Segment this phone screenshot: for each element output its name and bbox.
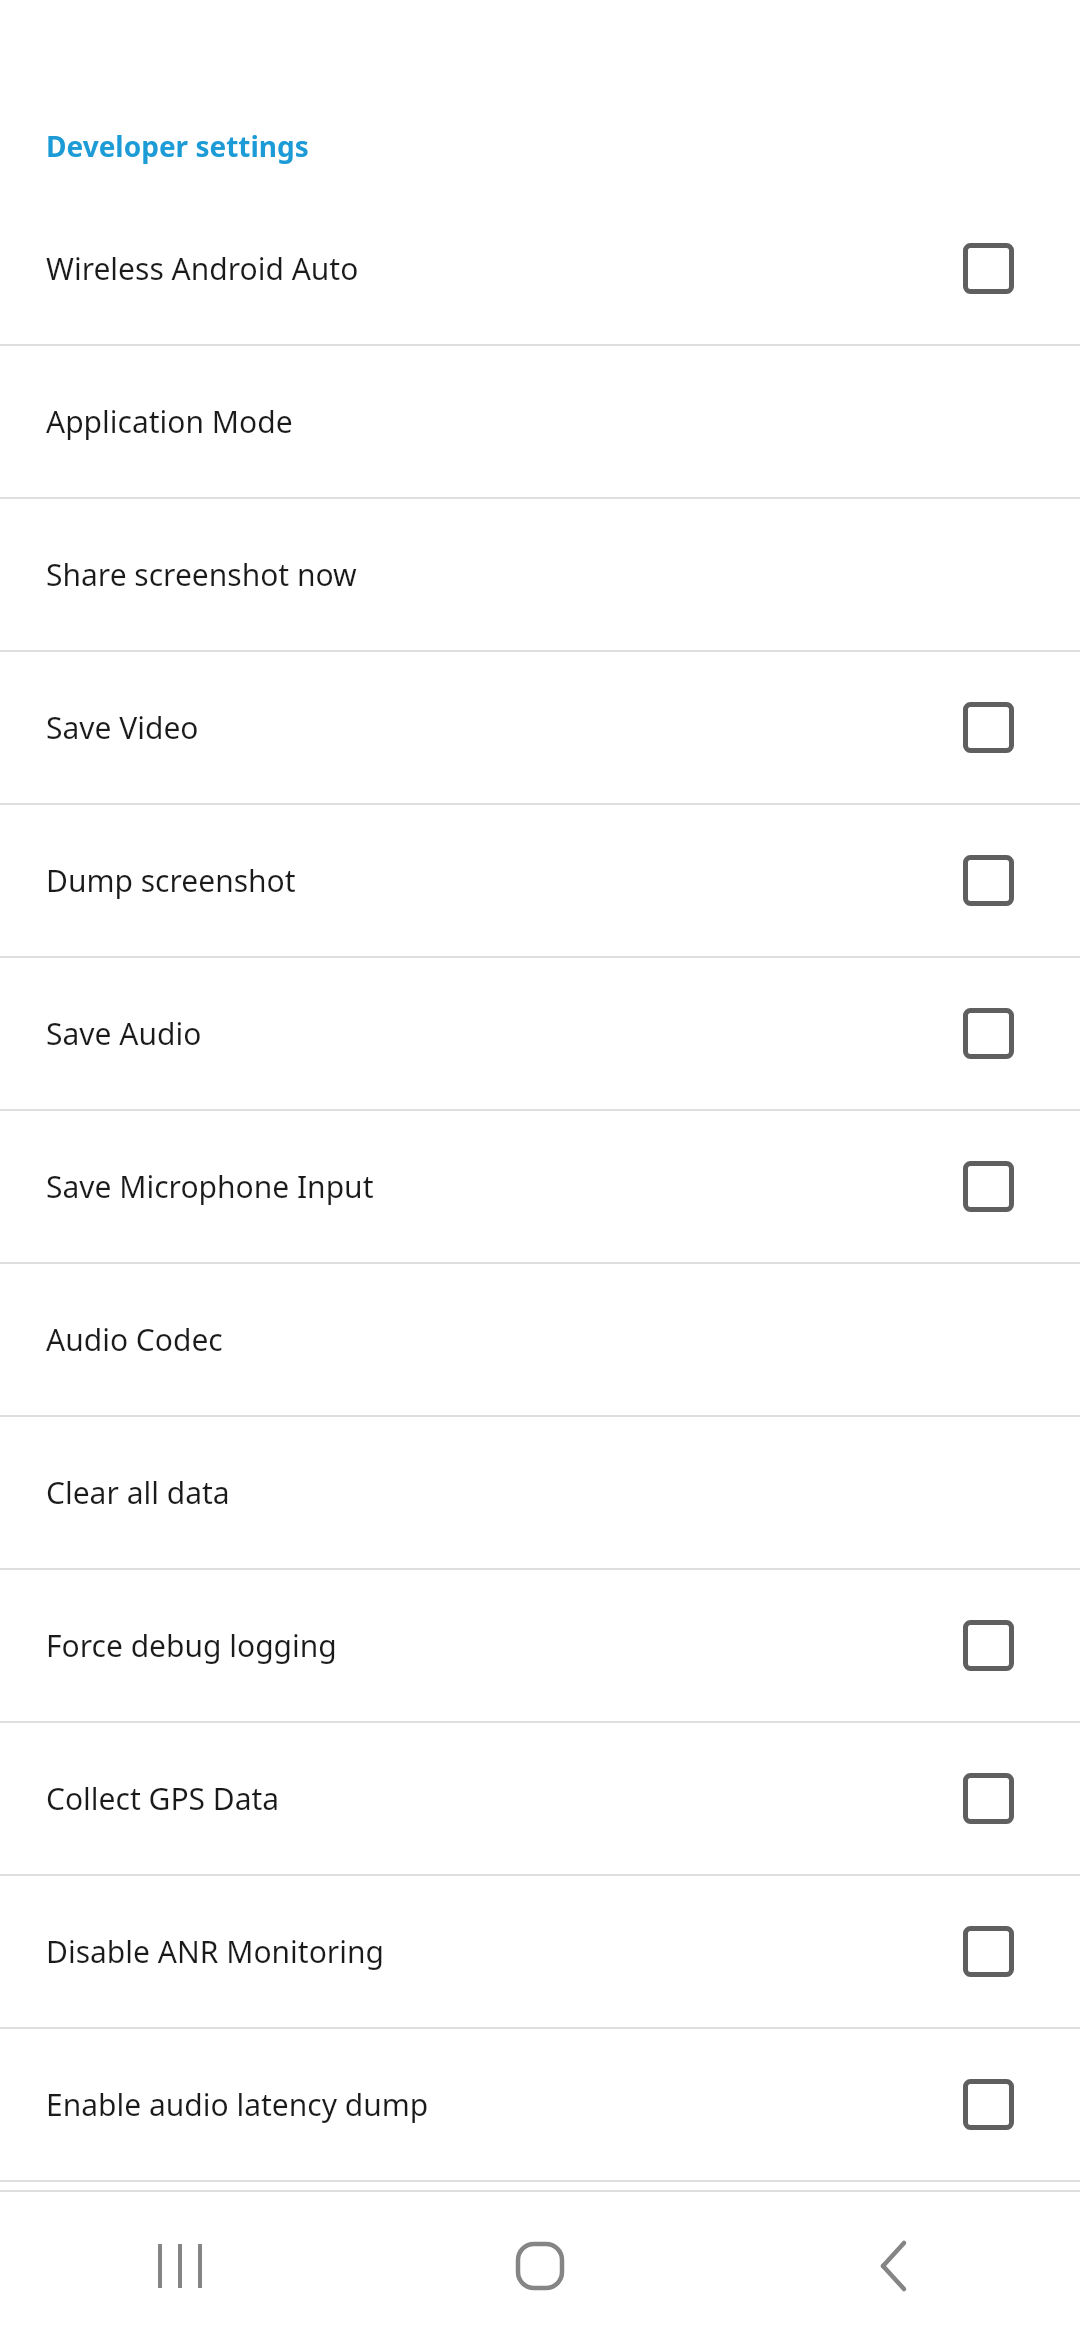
button[interactable]: Toggle Collect GPS Data: [963, 1773, 1014, 1824]
button[interactable]: Toggle Save Audio: [963, 1008, 1014, 1059]
staticText: Wireless Android Auto: [46, 248, 963, 289]
staticText: Share screenshot now: [46, 554, 1014, 595]
staticText: Collect GPS Data: [46, 1778, 963, 1819]
staticText: Audio Codec: [46, 1319, 1014, 1360]
button[interactable]: Save Audio: [0, 958, 1080, 1109]
button[interactable]: Recent apps: [0, 2192, 360, 2340]
button[interactable]: Audio Codec: [0, 1264, 1080, 1415]
button[interactable]: Disable ANR Monitoring: [0, 1876, 1080, 2027]
staticText: Application Mode: [46, 401, 1014, 442]
button[interactable]: Save Microphone Input: [0, 1111, 1080, 1262]
button[interactable]: Save Video: [0, 652, 1080, 803]
button[interactable]: Toggle Enable audio latency dump: [963, 2079, 1014, 2130]
button[interactable]: Toggle Save Microphone Input: [963, 1161, 1014, 1212]
staticText: Disable ANR Monitoring: [46, 1931, 963, 1972]
button[interactable]: Dump screenshot: [0, 805, 1080, 956]
button[interactable]: Force debug logging: [0, 1570, 1080, 1721]
staticText: Dump screenshot: [46, 860, 963, 901]
staticText: Developer settings: [46, 127, 309, 165]
staticText: Clear all data: [46, 1472, 1014, 1513]
button[interactable]: Clear all data: [0, 1417, 1080, 1568]
staticText: Force debug logging: [46, 1625, 963, 1666]
button[interactable]: Toggle Dump screenshot: [963, 855, 1014, 906]
button[interactable]: Share screenshot now: [0, 499, 1080, 650]
button[interactable]: Home: [360, 2192, 720, 2340]
button[interactable]: Enable audio latency dump: [0, 2029, 1080, 2180]
button[interactable]: Collect GPS Data: [0, 1723, 1080, 1874]
button[interactable]: Toggle Save Video: [963, 702, 1014, 753]
staticText: Save Microphone Input: [46, 1166, 963, 1207]
staticText: Save Video: [46, 707, 963, 748]
button[interactable]: Toggle Disable ANR Monitoring: [963, 1926, 1014, 1977]
button[interactable]: Toggle Wireless Android Auto: [963, 243, 1014, 294]
staticText: Save Audio: [46, 1013, 963, 1054]
button[interactable]: Wireless Android Auto: [0, 193, 1080, 344]
staticText: Enable audio latency dump: [46, 2084, 963, 2125]
button[interactable]: Application Mode: [0, 346, 1080, 497]
button[interactable]: Toggle Force debug logging: [963, 1620, 1014, 1671]
button[interactable]: Back: [720, 2192, 1080, 2340]
